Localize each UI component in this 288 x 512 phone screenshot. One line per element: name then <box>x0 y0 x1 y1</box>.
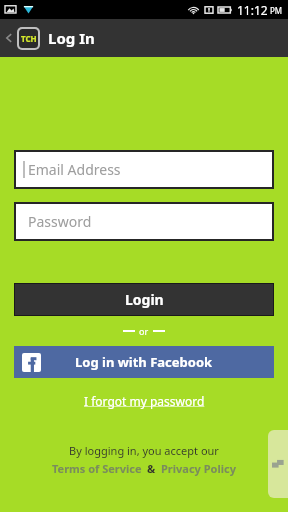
button[interactable]: Log in with Facebook <box>14 346 274 378</box>
staticText: Email Address <box>28 160 121 179</box>
button[interactable]: Terms of Service <box>52 461 142 476</box>
button[interactable]: Side panel handle <box>268 430 288 498</box>
staticText: I forgot my password <box>84 393 205 409</box>
staticText: Terms of Service <box>52 461 142 476</box>
staticText: or <box>139 325 149 337</box>
staticText: TCH <box>21 33 37 44</box>
button[interactable]: I forgot my password <box>78 391 211 411</box>
button[interactable]: Email Address <box>14 150 274 189</box>
button[interactable]: Password <box>14 202 274 241</box>
button[interactable]: Login <box>14 283 274 316</box>
staticText: Password <box>28 212 92 231</box>
button[interactable]: Privacy Policy <box>161 461 236 476</box>
staticText: Log In <box>48 28 95 48</box>
staticText: By logging in, you accept our <box>69 443 219 458</box>
staticText: Log in with Facebook <box>75 353 213 371</box>
staticText: Login <box>125 290 164 309</box>
staticText: Privacy Policy <box>161 461 236 476</box>
staticText: 11:12 <box>237 2 268 18</box>
button[interactable]: Back <box>4 33 14 43</box>
staticText: PM <box>270 5 283 16</box>
staticText: & <box>147 461 156 476</box>
